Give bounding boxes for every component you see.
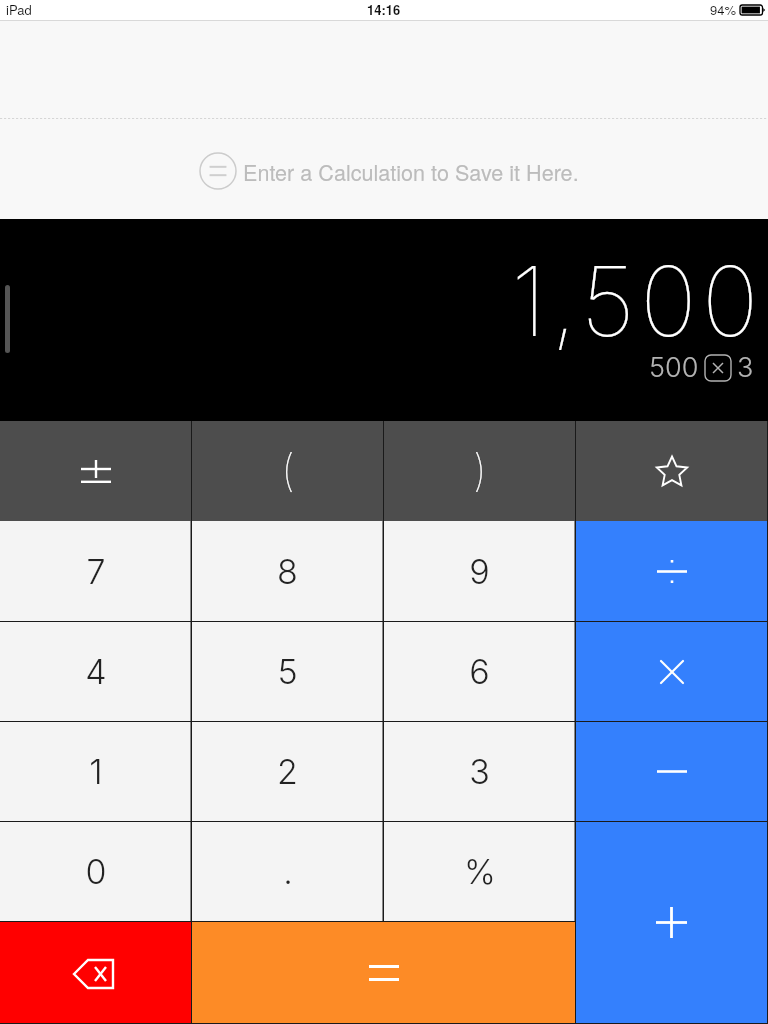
staticText: % bbox=[464, 851, 496, 892]
staticText: iPad bbox=[6, 0, 32, 19]
button[interactable]: Favourite bbox=[576, 421, 767, 521]
staticText: 500 bbox=[649, 351, 699, 384]
button[interactable]: ( bbox=[192, 421, 383, 521]
button[interactable]: 7 bbox=[0, 521, 191, 621]
button[interactable]: 0 bbox=[0, 822, 191, 921]
staticText: ( bbox=[281, 443, 295, 496]
staticText: 4 bbox=[85, 651, 107, 692]
button[interactable]: 3 bbox=[384, 722, 575, 821]
staticText: ) bbox=[473, 443, 487, 496]
button[interactable]: 4 bbox=[0, 622, 191, 721]
staticText: 5 bbox=[277, 651, 298, 692]
staticText: 1,500 bbox=[511, 243, 764, 359]
staticText: 14:16 bbox=[367, 0, 401, 19]
button[interactable]: Divide bbox=[576, 521, 767, 621]
staticText: . bbox=[283, 851, 293, 892]
button[interactable]: Plus bbox=[576, 822, 767, 1023]
button[interactable]: 8 bbox=[192, 521, 383, 621]
button[interactable]: 6 bbox=[384, 622, 575, 721]
button[interactable]: Multiply bbox=[576, 622, 767, 721]
staticText: 94% bbox=[710, 0, 737, 19]
staticText: 8 bbox=[277, 551, 298, 592]
staticText: 6 bbox=[469, 651, 490, 692]
button[interactable]: Minus bbox=[576, 722, 767, 821]
staticText: 1 bbox=[89, 751, 103, 792]
button[interactable]: 9 bbox=[384, 521, 575, 621]
button[interactable]: Backspace bbox=[0, 922, 191, 1023]
button[interactable]: 5 bbox=[192, 622, 383, 721]
staticText: 3 bbox=[737, 351, 754, 384]
button[interactable]: % bbox=[384, 822, 575, 921]
button[interactable]: Equals bbox=[192, 922, 575, 1023]
staticText: 9 bbox=[469, 551, 490, 592]
staticText: 7 bbox=[86, 551, 106, 592]
button[interactable]: 2 bbox=[192, 722, 383, 821]
staticText: 3 bbox=[469, 751, 490, 792]
staticText: 2 bbox=[277, 751, 298, 792]
button[interactable]: ) bbox=[384, 421, 575, 521]
button[interactable]: Plus minus bbox=[0, 421, 191, 521]
button[interactable]: . bbox=[192, 822, 383, 921]
staticText: Enter a Calculation to Save it Here. bbox=[243, 156, 579, 187]
staticText: 0 bbox=[85, 851, 107, 892]
button[interactable]: 1 bbox=[0, 722, 191, 821]
